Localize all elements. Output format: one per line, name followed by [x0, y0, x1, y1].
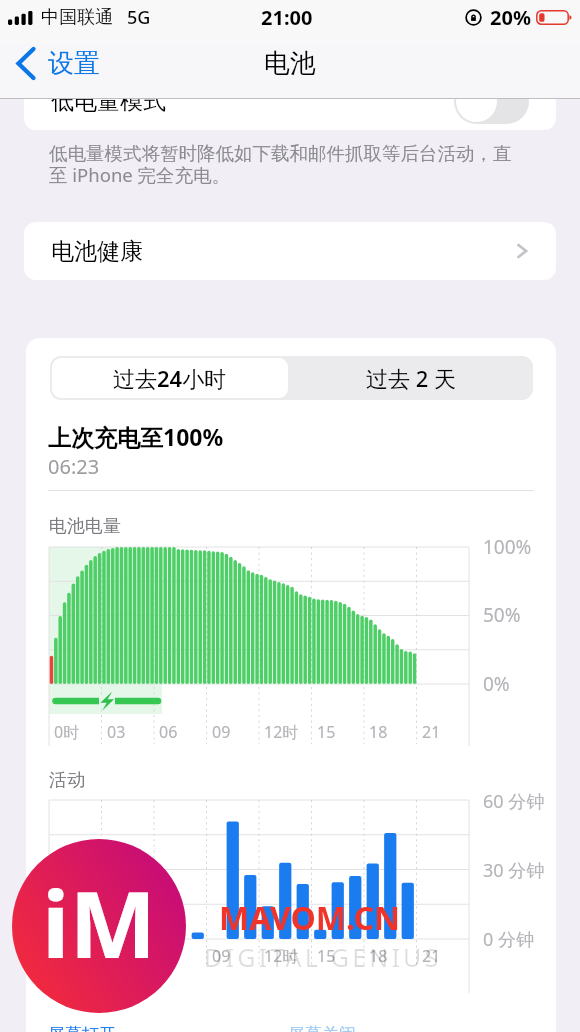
staticText: 15 [317, 721, 336, 743]
staticText: 设置 [48, 47, 100, 80]
staticText: 屏幕关闭 [288, 1024, 356, 1032]
staticText: 电池 [264, 47, 316, 80]
staticText: 0时 [54, 945, 80, 967]
staticText: 09 [212, 721, 231, 743]
staticText: 15 [317, 945, 336, 967]
staticText: 电池健康 [51, 237, 143, 266]
staticText: 低电量模式 [51, 87, 166, 116]
staticText: 过去 2 天 [366, 363, 457, 393]
staticText: 06 [159, 721, 178, 743]
staticText: 50% [483, 602, 521, 628]
staticText: 03 [107, 945, 126, 967]
staticText: MAVOM.CN [219, 896, 400, 940]
staticText: 09 [212, 945, 231, 967]
staticText: 0时 [54, 721, 80, 743]
staticText: iM [42, 860, 157, 985]
staticText: 18 [369, 721, 388, 743]
staticText: 12时 [264, 721, 299, 743]
staticText: 中国联通 [41, 6, 113, 29]
button[interactable]: 电池健康 [24, 222, 556, 280]
staticText: 21 [422, 945, 441, 967]
staticText: 100% [483, 534, 532, 560]
button[interactable]: 过去24小时 [52, 358, 288, 398]
staticText: 屏幕打开 [48, 1024, 116, 1032]
staticText: 5G [127, 5, 151, 30]
staticText: 低电量模式将暂时降低如下载和邮件抓取等后台活动，直至 iPhone 完全充电。 [49, 142, 527, 188]
staticText: 12时 [264, 945, 299, 967]
staticText: 过去24小时 [113, 363, 227, 393]
staticText: 活动 [49, 769, 85, 792]
staticText: 20% [490, 4, 531, 31]
button[interactable]: 过去 2 天 [292, 358, 531, 398]
staticText: 0% [483, 671, 510, 697]
staticText: 21:00 [261, 4, 313, 31]
staticText: 60 分钟 [483, 789, 545, 814]
button[interactable]: 低电量模式 [24, 72, 556, 130]
staticText: 03 [107, 721, 126, 743]
staticText: 30 分钟 [483, 858, 545, 883]
staticText: 上次充电至100% [48, 421, 224, 452]
staticText: 06 [159, 945, 178, 967]
staticText: DIGITAL GENIUS [204, 940, 442, 974]
staticText: 21 [422, 721, 441, 743]
staticText: 电池电量 [49, 515, 121, 538]
staticText: 06:23 [48, 453, 100, 480]
staticText: 0 分钟 [483, 927, 534, 952]
button[interactable]: Low Power Mode toggle [454, 79, 529, 124]
button[interactable]: 设置 [16, 47, 100, 80]
staticText: 18 [369, 945, 388, 967]
